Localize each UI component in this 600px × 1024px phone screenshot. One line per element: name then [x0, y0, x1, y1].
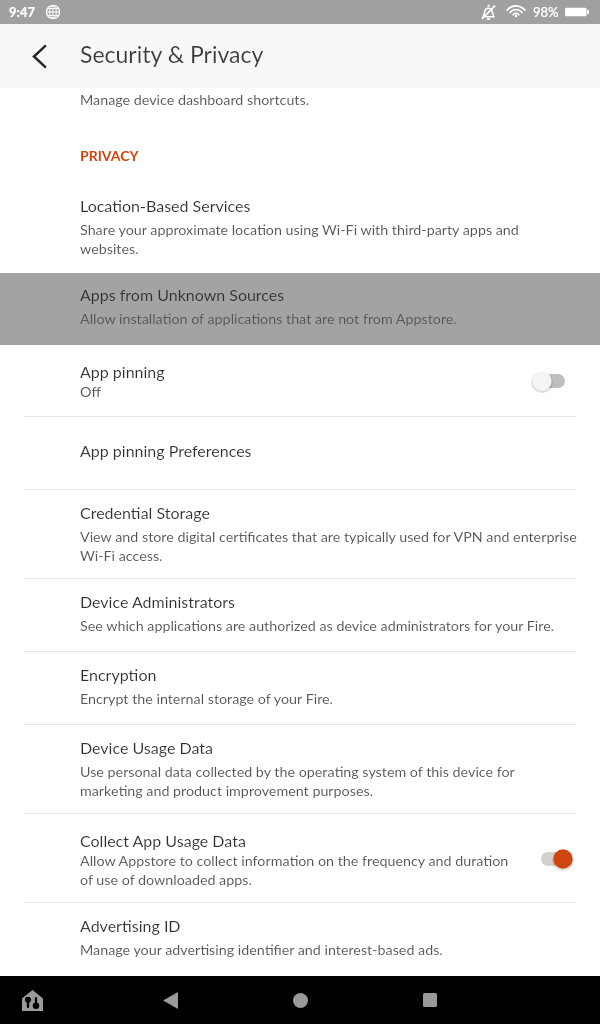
staticText: App pinning: [80, 362, 165, 381]
staticText: Device Administrators: [80, 592, 235, 611]
button[interactable]: Encryption: [0, 652, 600, 725]
staticText: Allow installation of applications that …: [80, 310, 457, 327]
staticText: Share your approximate location using Wi…: [80, 221, 578, 257]
staticText: 9:47: [9, 4, 35, 20]
button[interactable]: Credential Storage: [0, 490, 600, 579]
button[interactable]: Recent apps: [365, 976, 495, 1024]
staticText: Manage device dashboard shortcuts.: [80, 91, 310, 108]
button[interactable]: Manage device dashboard shortcuts.: [0, 88, 600, 185]
staticText: Credential Storage: [80, 503, 210, 522]
staticText: Location-Based Services: [80, 196, 251, 215]
staticText: Apps from Unknown Sources: [80, 285, 285, 304]
button[interactable]: Advertising ID: [0, 903, 600, 976]
button[interactable]: Collect App Usage Data: [0, 814, 600, 903]
button[interactable]: Location-Based Services: [0, 185, 600, 273]
button[interactable]: App pinning Preferences: [0, 417, 600, 490]
staticText: Manage your advertising identifier and i…: [80, 941, 443, 958]
button[interactable]: Back: [105, 976, 235, 1024]
staticText: Allow Appstore to collect information on…: [80, 852, 518, 888]
staticText: Security & Privacy: [80, 40, 264, 68]
staticText: See which applications are authorized as…: [80, 617, 555, 634]
staticText: Encryption: [80, 665, 157, 684]
button[interactable]: App pinning: [0, 345, 600, 417]
staticText: Use personal data collected by the opera…: [80, 763, 578, 799]
button[interactable]: Home: [235, 976, 365, 1024]
button[interactable]: Apps from Unknown Sources: [0, 273, 600, 345]
button[interactable]: Device Usage Data: [0, 725, 600, 814]
staticText: Device Usage Data: [80, 738, 213, 757]
button[interactable]: Device Administrators: [0, 579, 600, 652]
button[interactable]: Turn off Collect App Usage Data: [532, 842, 576, 876]
staticText: Advertising ID: [80, 916, 181, 935]
button[interactable]: Navigate up: [0, 24, 78, 88]
button[interactable]: Device home: [12, 980, 52, 1020]
staticText: Encrypt the internal storage of your Fir…: [80, 690, 333, 707]
staticText: View and store digital certificates that…: [80, 528, 578, 564]
staticText: App pinning Preferences: [80, 441, 252, 460]
staticText: Collect App Usage Data: [80, 831, 246, 850]
button[interactable]: Turn on App pinning: [532, 364, 576, 398]
staticText: 98%: [533, 4, 559, 20]
staticText: Off: [80, 383, 101, 400]
staticText: PRIVACY: [80, 147, 139, 164]
